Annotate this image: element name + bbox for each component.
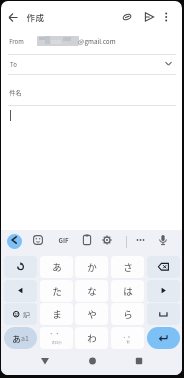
button[interactable]: は xyxy=(111,280,144,302)
button[interactable] xyxy=(4,6,22,28)
staticText: GIF xyxy=(58,236,69,245)
staticText: ?! xyxy=(126,339,130,346)
staticText: From xyxy=(9,37,24,46)
button[interactable] xyxy=(156,233,170,248)
button[interactable] xyxy=(2,80,182,104)
staticText: a1 xyxy=(21,333,29,343)
button[interactable] xyxy=(4,303,37,325)
staticText: や xyxy=(87,307,97,321)
staticText: あ xyxy=(52,260,62,274)
button[interactable]: GIF xyxy=(55,233,71,248)
staticText: 、。 xyxy=(123,332,133,339)
staticText: ら xyxy=(123,307,133,321)
button[interactable]: た xyxy=(40,280,73,302)
staticText: 作成 xyxy=(26,11,45,23)
button[interactable] xyxy=(2,29,182,54)
button[interactable] xyxy=(147,303,180,325)
button[interactable] xyxy=(4,280,37,302)
button[interactable]: さ xyxy=(111,256,144,278)
staticText: さ xyxy=(123,260,133,274)
button[interactable] xyxy=(2,54,182,74)
button[interactable] xyxy=(133,233,148,248)
staticText: な xyxy=(87,284,97,298)
button[interactable]: ら xyxy=(111,303,144,325)
button[interactable]: な xyxy=(75,280,108,302)
button[interactable] xyxy=(147,327,180,349)
button[interactable]: ゛゜ xyxy=(40,327,73,349)
button[interactable]: あ xyxy=(40,256,73,278)
button[interactable] xyxy=(4,256,37,278)
staticText: 記 xyxy=(23,310,30,318)
button[interactable] xyxy=(84,353,102,369)
button[interactable] xyxy=(100,233,114,248)
button[interactable] xyxy=(147,280,180,302)
button[interactable] xyxy=(80,233,94,248)
button[interactable] xyxy=(119,8,135,26)
button[interactable]: わ xyxy=(75,327,108,349)
staticText: 大⇔小 xyxy=(51,340,62,345)
staticText: ま xyxy=(52,307,62,321)
button[interactable] xyxy=(31,233,45,248)
staticText: To xyxy=(10,60,17,69)
button[interactable] xyxy=(7,234,22,249)
button[interactable]: 、。 xyxy=(111,327,144,349)
staticText: 件名 xyxy=(9,88,22,97)
button[interactable] xyxy=(159,8,174,26)
button[interactable]: や xyxy=(75,303,108,325)
staticText: ゛゜ xyxy=(50,331,63,340)
staticText: か xyxy=(87,260,97,274)
staticText: わ xyxy=(87,331,97,345)
button[interactable] xyxy=(141,8,157,26)
button[interactable]: あ xyxy=(4,327,37,349)
staticText: は xyxy=(123,284,133,298)
button[interactable] xyxy=(147,256,180,278)
button[interactable] xyxy=(130,353,148,369)
button[interactable]: ま xyxy=(40,303,73,325)
button[interactable] xyxy=(37,353,55,369)
staticText: @gmail.com xyxy=(78,37,116,46)
staticText: た xyxy=(52,284,62,298)
button[interactable]: か xyxy=(75,256,108,278)
staticText: あ xyxy=(12,332,21,344)
